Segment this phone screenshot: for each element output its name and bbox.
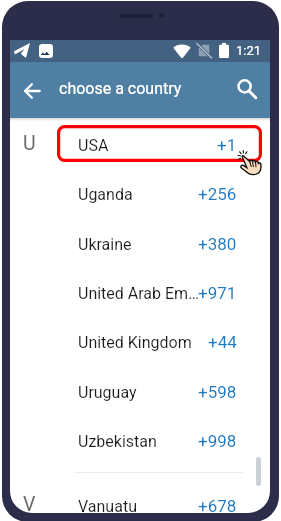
button[interactable]: Uzbekistan xyxy=(10,417,270,466)
button[interactable]: Back xyxy=(14,73,50,109)
staticText: choose a country xyxy=(59,79,182,98)
staticText: U xyxy=(23,132,36,155)
button[interactable]: Uganda xyxy=(10,170,270,219)
staticText: +971 xyxy=(198,283,237,303)
staticText: United Arab Emirates xyxy=(78,284,200,303)
button[interactable]: Uruguay xyxy=(10,368,270,417)
staticText: +44 xyxy=(208,332,237,352)
staticText: Uruguay xyxy=(78,383,200,402)
button[interactable]: Search xyxy=(237,79,257,99)
staticText: Uganda xyxy=(78,185,200,204)
button[interactable]: United Kingdom xyxy=(10,318,270,367)
staticText: United Kingdom xyxy=(78,333,200,352)
staticText: +256 xyxy=(198,184,237,204)
staticText: Ukraine xyxy=(78,235,200,254)
staticText: +598 xyxy=(198,382,237,402)
staticText: +678 xyxy=(198,496,237,513)
staticText: USA xyxy=(78,136,200,155)
button[interactable]: V xyxy=(10,482,270,513)
staticText: +998 xyxy=(198,431,237,451)
button[interactable]: United Arab Emirates xyxy=(10,269,270,318)
staticText: +380 xyxy=(198,234,237,254)
button[interactable]: Ukraine xyxy=(10,220,270,269)
staticText: Uzbekistan xyxy=(78,432,200,451)
staticText: +1 xyxy=(217,135,237,155)
button[interactable]: U xyxy=(10,121,270,170)
staticText: 1:21 xyxy=(236,43,262,58)
staticText: V xyxy=(23,493,36,513)
staticText: Vanuatu xyxy=(78,497,200,513)
